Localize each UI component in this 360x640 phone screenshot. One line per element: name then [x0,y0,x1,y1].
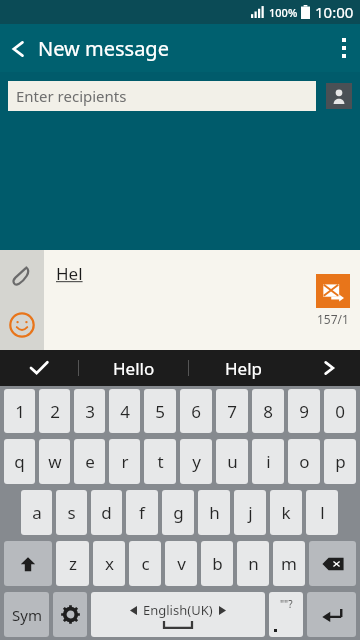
staticText: 8 [263,400,273,423]
button[interactable]: m [271,538,307,589]
button[interactable]: Keyboard settings [51,589,89,640]
button[interactable]: 4 [107,386,142,436]
button[interactable]: w [37,436,72,487]
staticText: Hel [56,262,83,285]
button[interactable]: q [2,436,37,487]
button[interactable]: Help [189,350,298,386]
staticText: a [32,501,42,524]
staticText: 9 [299,400,309,423]
staticText: m [281,552,297,575]
button[interactable]: f [124,487,160,538]
button[interactable]: 1 [2,386,37,436]
button[interactable]: a [19,487,54,538]
staticText: s [67,501,76,524]
staticText: 5 [155,400,165,423]
button[interactable]: Back [0,29,177,68]
button[interactable]: o [286,436,322,487]
staticText: Sym [12,605,42,625]
button[interactable]: p [322,436,358,487]
staticText: w [48,450,62,473]
button[interactable]: v [163,538,199,589]
staticText: k [281,501,291,524]
button[interactable]: 3 [72,386,107,436]
staticText: ""? [280,597,293,611]
other: Back [10,38,26,60]
button[interactable]: i [250,436,286,487]
button[interactable]: Backspace [307,538,358,589]
staticText: x [105,552,114,575]
button[interactable]: b [199,538,235,589]
button[interactable]: t [142,436,178,487]
button[interactable]: Insert emoticon [0,300,44,350]
button[interactable]: g [160,487,196,538]
staticText: z [69,552,77,575]
staticText: f [139,501,145,524]
button[interactable]: r [107,436,142,487]
staticText: l [320,501,325,524]
staticText: Enter recipients [16,86,127,106]
button[interactable]: y [178,436,214,487]
button[interactable]: 5 [142,386,178,436]
button[interactable]: x [91,538,127,589]
button[interactable]: 6 [178,386,214,436]
staticText: c [141,552,150,575]
staticText: 6 [191,400,201,423]
button[interactable]: z [54,538,91,589]
staticText: j [248,501,253,524]
staticText: p [335,450,346,473]
staticText: i [266,450,271,473]
button[interactable]: 7 [214,386,250,436]
staticText: t [157,450,164,473]
button[interactable]: k [268,487,304,538]
button[interactable]: More suggestions [298,350,360,386]
button[interactable]: 8 [250,386,286,436]
staticText: h [209,501,220,524]
button[interactable]: l [304,487,340,538]
staticText: o [299,450,310,473]
button[interactable]: n [235,538,271,589]
staticText: b [212,552,223,575]
staticText: g [173,501,184,524]
staticText: New message [38,35,169,62]
button[interactable]: Enter [305,589,358,640]
button[interactable]: s [54,487,89,538]
button[interactable]: 0 [322,386,358,436]
staticText: 4 [120,400,130,423]
button[interactable]: Enter recipients [8,81,316,111]
button[interactable]: e [72,436,107,487]
button[interactable]: Add recipient from contacts [326,83,352,109]
button[interactable]: 9 [286,386,322,436]
staticText: v [177,552,186,575]
button[interactable]: Accept suggestion [0,350,78,386]
staticText: English(UK) [143,601,213,619]
staticText: Help [225,357,263,380]
button[interactable]: j [232,487,268,538]
button[interactable]: Shift [2,538,54,589]
staticText: q [14,450,25,473]
button[interactable]: Space [89,589,267,640]
staticText: 2 [50,400,60,423]
staticText: Hello [113,357,155,380]
button[interactable]: Hello [79,350,188,386]
button[interactable]: 2 [37,386,72,436]
button[interactable]: Hel [44,250,360,350]
button[interactable]: More options [328,28,360,68]
button[interactable]: Send message [316,274,350,308]
button[interactable]: h [196,487,232,538]
staticText: 7 [227,400,237,423]
button[interactable]: Punctuation [267,589,305,640]
button[interactable]: c [127,538,163,589]
staticText: n [248,552,259,575]
button[interactable]: d [89,487,124,538]
staticText: 157/1 [317,311,349,327]
button[interactable]: u [214,436,250,487]
staticText: r [121,450,129,473]
staticText: y [192,450,201,473]
button[interactable]: Attach [0,250,44,300]
staticText: e [85,450,95,473]
staticText: u [227,450,238,473]
staticText: 10:00 [315,2,354,22]
staticText: 0 [335,400,345,423]
button[interactable]: Symbols [2,589,51,640]
staticText: 100% [269,5,298,20]
